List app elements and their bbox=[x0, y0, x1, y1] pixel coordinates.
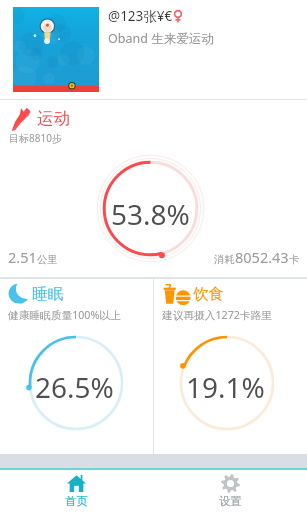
button[interactable]: @123张¥€ bbox=[0, 0, 307, 99]
staticText: 消耗 bbox=[214, 253, 235, 266]
staticText: 19.1% bbox=[186, 368, 265, 406]
staticText: 设置 bbox=[219, 494, 242, 508]
staticText: 目标8810步 bbox=[9, 131, 62, 145]
staticText: 建议再摄入1272卡路里 bbox=[162, 308, 272, 323]
button[interactable]: 设置 Settings bbox=[153, 470, 307, 512]
staticText: 53.8% bbox=[111, 195, 190, 233]
button[interactable]: 首页 Home bbox=[0, 470, 153, 512]
staticText: 2.51 bbox=[8, 247, 37, 267]
staticText: 8052.43 bbox=[235, 247, 289, 267]
button[interactable]: 睡眠 bbox=[0, 279, 153, 454]
button[interactable]: 运动 bbox=[0, 100, 307, 277]
staticText: @123张¥€ bbox=[108, 7, 173, 25]
staticText: 卡 bbox=[289, 253, 300, 266]
staticText: 首页 bbox=[65, 494, 88, 508]
staticText: 公里 bbox=[37, 253, 58, 266]
button[interactable]: 饮食 bbox=[154, 279, 307, 454]
staticText: 饮食 bbox=[193, 284, 224, 304]
staticText: 睡眠 bbox=[32, 284, 63, 304]
staticText: 运动 bbox=[37, 108, 70, 129]
staticText: Oband 生来爱运动 bbox=[108, 30, 214, 47]
staticText: 健康睡眠质量100%以上 bbox=[8, 308, 121, 323]
staticText: 26.5% bbox=[35, 368, 114, 406]
